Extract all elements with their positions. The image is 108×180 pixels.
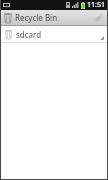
staticText: sdcard [16,29,42,40]
button[interactable]: Recycle Bin [1,10,107,25]
button[interactable]: sdcard [1,26,107,42]
staticText: 11:51 [87,0,105,10]
button[interactable]: Empty Recycle Bin [93,12,104,23]
staticText: Recycle Bin [15,12,58,23]
